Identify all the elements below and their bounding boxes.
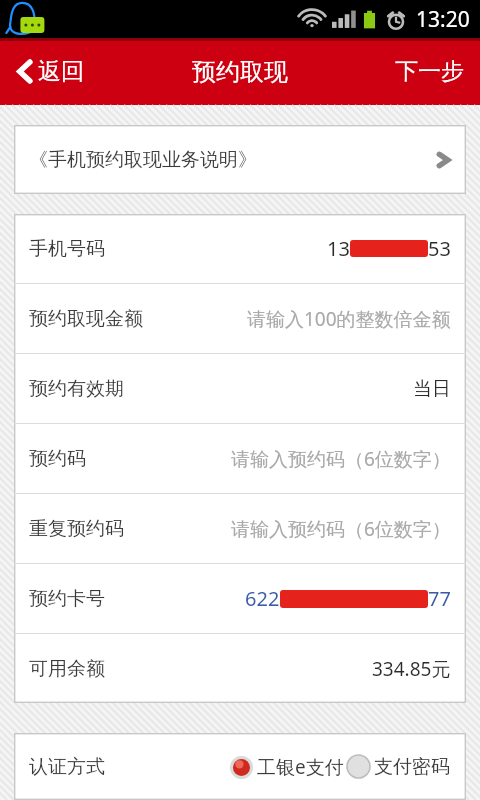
button[interactable]: 支付密码 [345,750,451,783]
staticText: 可用余额 [29,657,105,681]
button[interactable]: 可用余额 [14,634,466,703]
staticText: 53 [428,235,451,262]
staticText: 请输入预约码（6位数字） [231,516,451,542]
staticText: 请输入100的整数倍金额 [247,306,451,332]
other: 查看业务说明 [436,149,451,171]
staticText: 预约取现金额 [29,307,143,331]
staticText: 支付密码 [374,755,450,779]
staticText: 当日 [413,377,451,401]
staticText: 77 [428,585,451,612]
button[interactable]: 预约卡号 [14,564,466,633]
staticText: 预约码 [29,447,86,471]
staticText: 《手机预约取现业务说明》 [29,148,436,172]
staticText: 13 [327,235,350,262]
button[interactable]: 预约有效期 [14,354,466,423]
staticText: 工银e支付 [257,754,344,780]
staticText: 认证方式 [29,755,105,779]
staticText: 预约取现 [192,57,288,87]
button[interactable]: 下一步 [389,49,470,94]
staticText: 请输入预约码（6位数字） [231,446,451,472]
button[interactable]: 返回 [10,49,90,94]
staticText: 622 [245,585,280,612]
staticText: 手机号码 [29,237,105,261]
button[interactable]: 预约码 [14,424,466,493]
button[interactable]: 《手机预约取现业务说明》 [14,125,466,194]
staticText: 13:20 [416,5,470,34]
staticText: 334.85元 [372,656,451,682]
staticText: 预约有效期 [29,377,124,401]
staticText: 返回 [38,57,84,86]
staticText: 下一步 [395,57,464,86]
staticText: 预约卡号 [29,587,105,611]
button[interactable]: 预约取现金额 [14,284,466,353]
staticText: 重复预约码 [29,517,124,541]
button[interactable]: 工银e支付 [228,750,345,784]
button[interactable]: 手机号码 [14,214,466,283]
button[interactable]: 重复预约码 [14,494,466,563]
